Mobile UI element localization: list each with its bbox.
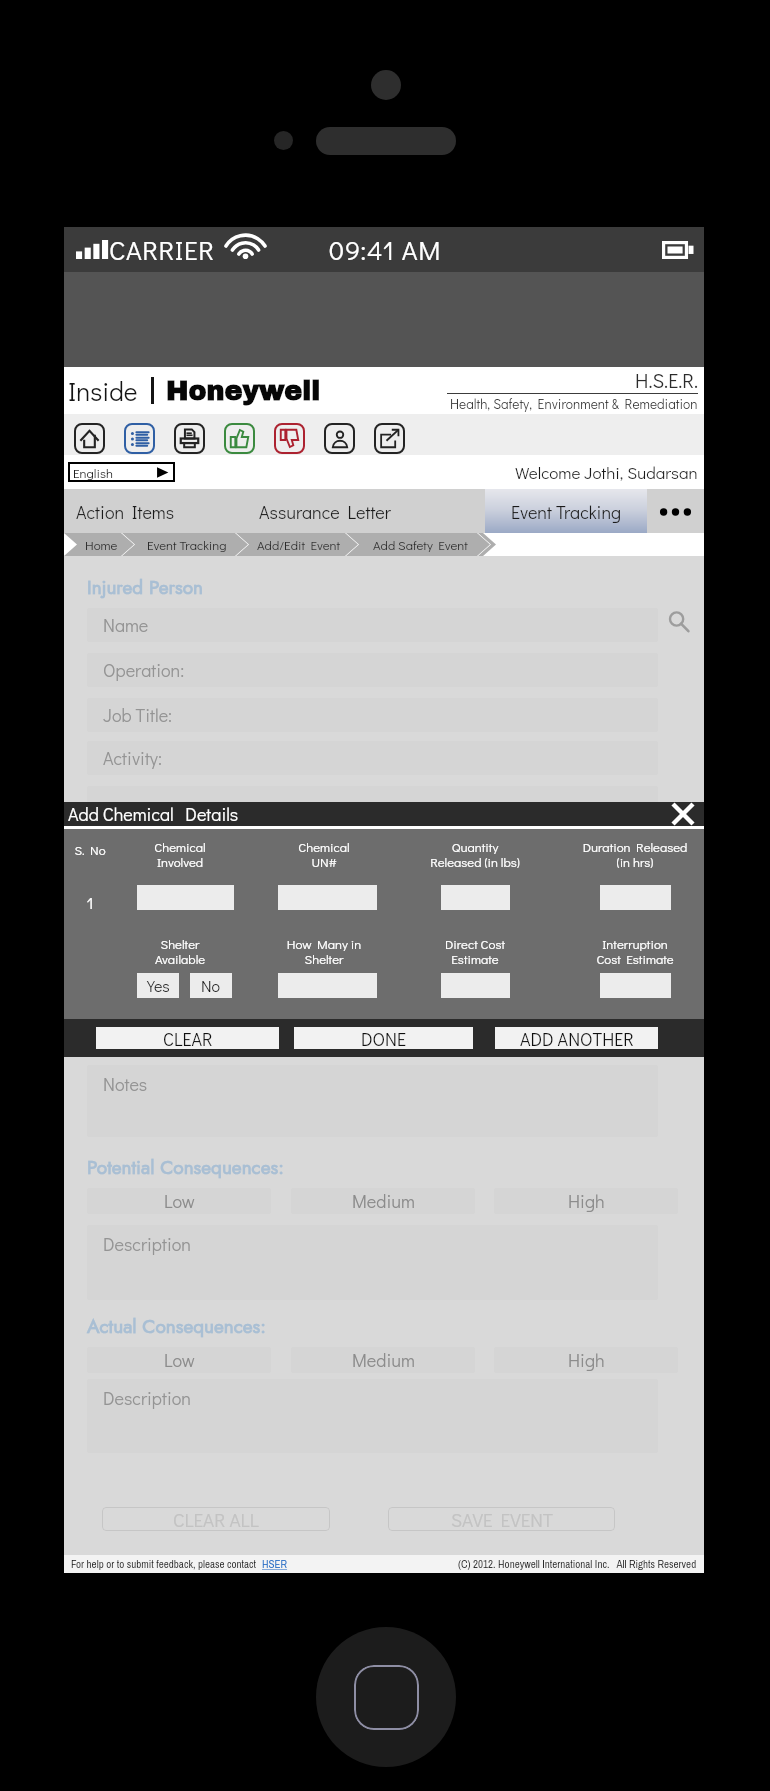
button[interactable]: Home — [64, 533, 134, 556]
staticText: CLEAR — [163, 1027, 213, 1049]
staticText: Operation: — [103, 658, 185, 682]
staticText: Chemical UN# — [259, 838, 389, 870]
staticText: (C) 2012. Honeywell International Inc. A… — [458, 1557, 697, 1572]
staticText: Interruption Cost Estimate — [555, 935, 715, 967]
staticText: Add Safety Event — [373, 536, 468, 553]
staticText: Add/Edit Event — [257, 536, 341, 553]
button[interactable]: Home — [74, 423, 105, 454]
button[interactable]: DONE — [294, 1027, 473, 1049]
button[interactable]: Description — [87, 1379, 658, 1453]
staticText: SAVE EVENT — [451, 1507, 553, 1531]
staticText: Activity: — [103, 746, 162, 770]
staticText: For help or to submit feedback, please c… — [71, 1557, 262, 1572]
staticText: CARRIER — [109, 232, 215, 267]
button[interactable]: Event Tracking — [122, 533, 248, 556]
staticText: English — [73, 464, 113, 481]
staticText: Chemical Involved — [115, 838, 245, 870]
staticText: Name — [103, 613, 149, 637]
staticText: H.S.E.R. — [635, 367, 698, 393]
staticText: Medium — [352, 1348, 415, 1372]
button[interactable]: Name — [87, 608, 658, 642]
staticText: Honeywell — [166, 376, 321, 405]
staticText: Action Items — [76, 500, 175, 524]
staticText: Potential Consequences: — [87, 1154, 284, 1181]
button[interactable]: CLEAR — [96, 1027, 279, 1049]
button[interactable] — [478, 533, 496, 556]
button[interactable]: Job Title: — [87, 698, 658, 732]
staticText: Low — [164, 1348, 195, 1372]
staticText: ADD ANOTHER — [520, 1027, 634, 1049]
staticText: Notes — [103, 1072, 148, 1096]
button[interactable] — [87, 786, 658, 820]
staticText: High — [568, 1189, 605, 1213]
button[interactable]: Profile — [324, 423, 355, 454]
button[interactable]: HSER — [262, 1557, 288, 1572]
button[interactable]: My Items — [124, 423, 155, 454]
staticText: Event Tracking — [511, 500, 622, 524]
button[interactable]: Print — [174, 423, 205, 454]
staticText: Add Chemical Details — [68, 802, 239, 826]
staticText: Health, Safety, Environment & Remediatio… — [450, 395, 698, 413]
staticText: Low — [164, 1189, 195, 1213]
staticText: High — [568, 1348, 605, 1372]
staticText: Quantity Released (in lbs) — [400, 838, 550, 870]
button[interactable]: Dislike — [274, 423, 305, 454]
button[interactable]: Add Safety Event — [346, 533, 490, 556]
staticText: 1 — [70, 891, 110, 913]
button[interactable]: Action Items — [64, 489, 249, 535]
button[interactable]: Operation: — [87, 653, 658, 687]
staticText: Injured Person — [87, 574, 204, 601]
button[interactable]: Add/Edit Event — [236, 533, 358, 556]
staticText: Actual Consequences: — [87, 1313, 266, 1340]
button[interactable]: English — [68, 462, 175, 482]
button[interactable]: Home button — [316, 1627, 456, 1767]
staticText: DONE — [361, 1027, 407, 1049]
staticText: Medium — [352, 1189, 415, 1213]
button[interactable]: Yes — [137, 973, 179, 998]
staticText: Description — [103, 1386, 191, 1410]
button[interactable]: SAVE EVENT — [388, 1507, 615, 1531]
staticText: 09:41 AM — [329, 232, 442, 267]
button[interactable]: Low — [87, 1347, 271, 1373]
button[interactable]: Medium — [291, 1347, 475, 1373]
staticText: Direct Cost Estimate — [400, 935, 550, 967]
staticText: Yes — [147, 975, 170, 996]
button[interactable]: Event Tracking — [485, 489, 647, 535]
staticText: How Many in Shelter — [254, 935, 394, 967]
staticText: Job Title: — [103, 703, 173, 727]
button[interactable]: Activity: — [87, 741, 658, 775]
button[interactable]: Low — [87, 1188, 271, 1214]
button[interactable]: Close — [670, 802, 696, 826]
button[interactable]: No — [190, 973, 232, 998]
button[interactable]: High — [494, 1188, 678, 1214]
button[interactable]: More tabs — [647, 489, 704, 535]
button[interactable]: Assurance Letter — [249, 489, 485, 535]
button[interactable]: Medium — [291, 1188, 475, 1214]
button[interactable]: Description — [87, 1225, 658, 1300]
staticText: Shelter Available — [115, 935, 245, 967]
staticText: Duration Released (in hrs) — [555, 838, 715, 870]
button[interactable]: CLEAR ALL — [102, 1507, 330, 1531]
staticText: Description — [103, 1232, 191, 1256]
staticText: Welcome Jothi, Sudarsan — [515, 461, 698, 483]
staticText: CLEAR ALL — [173, 1507, 259, 1531]
button[interactable]: Search — [660, 605, 698, 639]
staticText: No — [201, 975, 221, 996]
staticText: Home — [85, 536, 118, 553]
button[interactable]: High — [494, 1347, 678, 1373]
staticText: S. No — [55, 841, 125, 858]
button[interactable]: ADD ANOTHER — [495, 1027, 658, 1049]
button[interactable]: Notes — [87, 1065, 658, 1137]
button[interactable]: Share — [374, 423, 405, 454]
button[interactable]: Like — [224, 423, 255, 454]
staticText: Inside — [68, 374, 138, 408]
staticText: Assurance Letter — [259, 500, 391, 524]
staticText: Event Tracking — [147, 536, 227, 553]
